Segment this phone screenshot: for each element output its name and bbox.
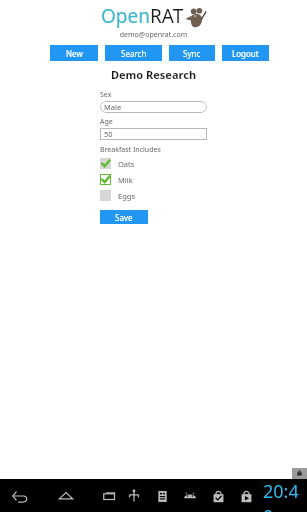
button[interactable]: Logout: [222, 45, 269, 61]
button[interactable]: New: [50, 45, 98, 61]
button[interactable]: Male: [100, 101, 207, 113]
staticText: 50: [104, 129, 113, 139]
staticText: Sync: [183, 48, 201, 59]
button[interactable]: Milk: [100, 174, 133, 185]
button[interactable]: Home: [54, 484, 78, 508]
button[interactable]: Oats: [100, 158, 135, 169]
button[interactable]: Android system update: [178, 484, 202, 508]
staticText: Save: [115, 212, 133, 223]
button[interactable]: USB connected: [122, 484, 146, 508]
button[interactable]: Search: [105, 45, 162, 61]
staticText: Breakfast Includes: [100, 145, 161, 155]
staticText: Eggs: [118, 191, 135, 201]
button[interactable]: Play Store: [234, 484, 258, 508]
staticText: Age: [100, 117, 113, 127]
staticText: New: [66, 48, 83, 59]
staticText: Search: [121, 48, 147, 59]
button[interactable]: Storage: [150, 484, 174, 508]
staticText: Demo Research: [0, 67, 307, 82]
staticText: Milk: [118, 175, 133, 185]
button[interactable]: Sync: [169, 45, 215, 61]
button[interactable]: Recent apps: [98, 484, 122, 508]
button[interactable]: Save: [100, 210, 148, 224]
button[interactable]: Back: [8, 484, 32, 508]
staticText: Sex: [100, 90, 112, 100]
button[interactable]: Eggs: [100, 190, 135, 201]
staticText: demo@openrat.com: [0, 30, 307, 40]
staticText: Open: [101, 3, 150, 29]
staticText: Male: [104, 102, 122, 112]
button[interactable]: App installed: [206, 484, 230, 508]
button[interactable]: Notifications: [292, 468, 307, 479]
staticText: 20:40: [263, 479, 307, 512]
staticText: Logout: [232, 48, 259, 59]
staticText: RAT: [150, 3, 184, 29]
button[interactable]: 50: [100, 128, 207, 140]
staticText: Oats: [118, 159, 135, 169]
